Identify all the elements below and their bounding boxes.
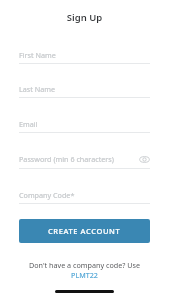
staticText: Company Code* <box>19 190 75 200</box>
button[interactable]: First Name <box>19 50 150 64</box>
button[interactable]: Company Code* <box>19 190 150 204</box>
staticText: Don't have a company code? Use PLMT22 <box>19 260 150 280</box>
staticText: Password (min 6 characters) <box>19 154 114 164</box>
button[interactable]: CREATE ACCOUNT <box>19 219 150 243</box>
staticText: Last Name <box>19 84 55 94</box>
button[interactable]: Password (min 6 characters) <box>19 153 150 169</box>
button[interactable]: Last Name <box>19 84 150 98</box>
staticText: CREATE ACCOUNT <box>48 226 121 236</box>
staticText: First Name <box>19 50 56 60</box>
button[interactable]: Show password <box>138 153 150 165</box>
button[interactable]: Email <box>19 119 150 133</box>
button[interactable]: Don't have a company code? Use PLMT22 <box>19 260 150 280</box>
staticText: Sign Up <box>19 11 150 24</box>
staticText: Email <box>19 119 38 129</box>
